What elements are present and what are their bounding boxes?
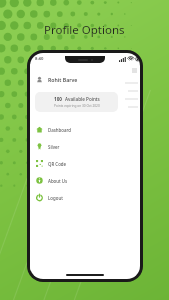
other: QR Code bbox=[36, 160, 43, 167]
button[interactable]: About Us bbox=[30, 172, 123, 189]
staticText: Available Points bbox=[65, 96, 100, 102]
other: Profile bbox=[36, 76, 43, 83]
other: Dashboard bbox=[36, 126, 43, 133]
staticText: Rohit Barve bbox=[48, 76, 78, 83]
staticText: QR Code bbox=[48, 161, 67, 167]
button[interactable]: Profile bbox=[30, 73, 123, 86]
staticText: Points expiring on 30 Oct 2020 bbox=[54, 104, 100, 108]
staticText: Profile Options bbox=[44, 22, 125, 38]
staticText: Dashboard bbox=[48, 127, 72, 133]
staticText: Silver bbox=[48, 144, 60, 150]
button[interactable]: Dashboard bbox=[30, 121, 123, 138]
staticText: Logout bbox=[48, 195, 63, 201]
other: Silver bbox=[36, 143, 43, 150]
other: About Us bbox=[36, 177, 43, 184]
staticText: 100 bbox=[54, 96, 62, 102]
button[interactable]: Logout bbox=[30, 189, 123, 206]
button[interactable]: QR Code bbox=[30, 155, 123, 172]
other: Logout bbox=[36, 194, 43, 201]
button[interactable]: Silver bbox=[30, 138, 123, 155]
staticText: About Us bbox=[48, 178, 68, 184]
button[interactable]: 100 bbox=[35, 92, 118, 112]
staticText: 8:40 bbox=[35, 56, 44, 62]
